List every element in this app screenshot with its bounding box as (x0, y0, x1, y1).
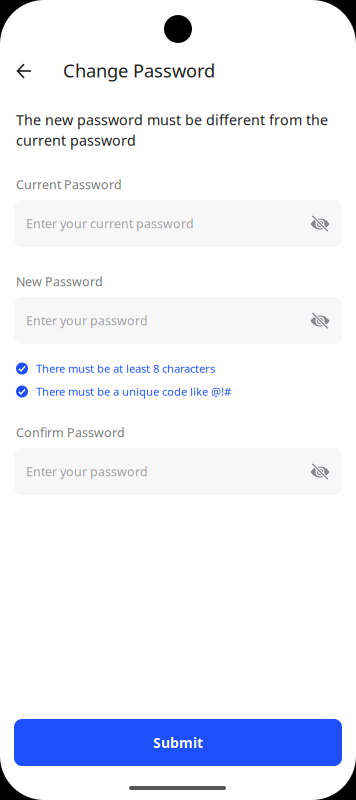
staticText: Current Password (16, 176, 122, 193)
staticText: There must be a unique code like @!# (36, 384, 231, 399)
button[interactable]: Submit (14, 719, 342, 766)
staticText: Enter your password (26, 312, 148, 329)
button[interactable]: Show password (305, 305, 335, 335)
staticText: Submit (153, 733, 203, 752)
button[interactable]: Show password (305, 208, 335, 238)
button[interactable]: Show password (305, 456, 335, 486)
staticText: Enter your password (26, 463, 148, 480)
staticText: New Password (16, 273, 103, 290)
staticText: Change Password (63, 58, 215, 83)
staticText: There must be at least 8 characters (36, 361, 215, 376)
staticText: The new password must be different from … (16, 110, 328, 150)
staticText: Confirm Password (16, 424, 125, 441)
staticText: Enter your current password (26, 215, 194, 232)
